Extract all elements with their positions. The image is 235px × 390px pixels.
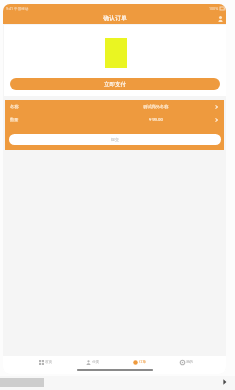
button[interactable]: Account [217,15,223,22]
staticText: 立即支付 [104,81,126,88]
staticText: 100% [209,6,219,11]
staticText: 订单 [139,360,147,365]
button[interactable]: 我的 [163,356,210,369]
staticText: 分类 [92,360,100,365]
staticText: 测试商品名称 [143,104,169,109]
staticText: ￥99.00 [148,117,163,123]
button[interactable]: 订单 [116,356,163,369]
button[interactable]: 提交 [9,134,221,145]
staticText: 我的 [186,360,194,365]
staticText: 9:41 中国移动 [6,6,29,11]
staticText: 提交 [111,137,119,142]
staticText: 确认订单 [103,14,127,22]
staticText: 数量 [10,117,19,122]
button[interactable]: 首页 [23,356,69,369]
button[interactable]: 数量 [5,113,224,126]
button[interactable]: 立即支付 [10,78,220,90]
button[interactable]: 名称 [5,100,224,113]
staticText: 首页 [45,360,53,365]
button[interactable]: 分类 [69,356,116,369]
staticText: 名称 [10,104,19,109]
